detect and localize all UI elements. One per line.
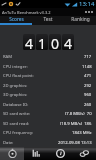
staticText: 0 [51, 34, 60, 50]
staticText: (7.8 MB/s) 70 [65, 111, 92, 117]
staticText: 3D graphics: [3, 92, 28, 98]
button[interactable]: Ranking [64, 16, 96, 23]
button[interactable]: 3D graphics: [0, 90, 96, 100]
button[interactable]: Comments [72, 147, 96, 160]
button[interactable]: AnTuTu Benchmark v3.3.2 [0, 8, 96, 16]
staticText: 1843 MHz [72, 130, 92, 136]
staticText: 1148 [82, 64, 92, 70]
button[interactable]: More options [85, 11, 93, 13]
staticText: CPU float point: [3, 73, 34, 79]
button[interactable]: CPU float point: [0, 71, 96, 81]
button[interactable]: Details [48, 147, 72, 160]
button[interactable]: Date: [0, 138, 96, 148]
staticText: Test [43, 16, 53, 23]
staticText: Date: [3, 140, 14, 146]
button[interactable]: Test [0, 147, 24, 160]
staticText: 260 [84, 102, 92, 108]
staticText: Ranking [71, 16, 90, 23]
staticText: 1 [38, 34, 47, 50]
staticText: 717 [84, 54, 92, 60]
staticText: (18.9 MB/s) 186 [60, 121, 92, 127]
staticText: 292 [84, 83, 92, 89]
staticText: 13:14 [79, 0, 95, 8]
staticText: SD card read: [3, 121, 30, 127]
button[interactable]: Scores [24, 147, 48, 160]
staticText: 471 [84, 73, 92, 79]
staticText: 2012-09-08 13:13 [58, 140, 92, 146]
button[interactable]: Test [32, 16, 64, 23]
staticText: CPU frequency: [3, 130, 34, 136]
staticText: CPU integer: [3, 64, 28, 70]
staticText: 960 [84, 92, 92, 98]
staticText: 4 [64, 34, 73, 50]
button[interactable]: CPU frequency: [0, 128, 96, 138]
button[interactable]: Database IO: [0, 100, 96, 110]
staticText: RAM [3, 54, 13, 60]
button[interactable]: RAM [0, 52, 96, 62]
button[interactable]: CPU integer: [0, 62, 96, 72]
staticText: 2D graphics: [3, 83, 28, 89]
button[interactable]: SD card write: [0, 109, 96, 119]
button[interactable]: SD card read: [0, 119, 96, 129]
staticText: Scores [9, 16, 24, 23]
staticText: Database IO: [3, 102, 29, 108]
staticText: 4 [25, 34, 34, 50]
button[interactable]: 2D graphics: [0, 81, 96, 91]
staticText: SD card write: [3, 111, 31, 117]
button[interactable]: Scores [0, 16, 32, 23]
staticText: AnTuTu Benchmark v3.3.2 [2, 10, 51, 15]
